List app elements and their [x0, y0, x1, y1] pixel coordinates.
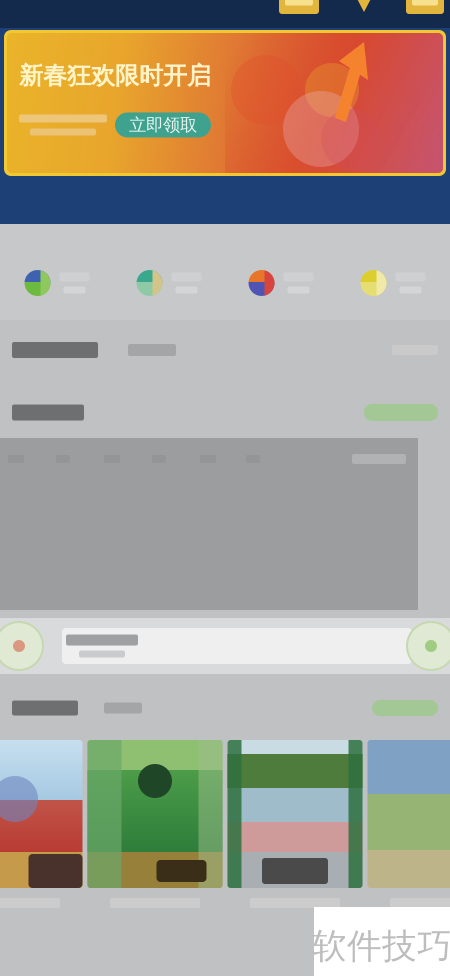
button[interactable]: Notifications	[352, 0, 376, 14]
button[interactable]: More games	[372, 700, 438, 716]
button[interactable]	[87, 740, 222, 916]
button[interactable]: Shop	[0, 618, 38, 674]
button[interactable]	[227, 740, 362, 916]
button[interactable]	[1, 224, 113, 320]
button[interactable]: Coins	[276, 0, 322, 14]
button[interactable]	[113, 224, 225, 320]
staticText: 新春狂欢限时开启	[19, 61, 211, 90]
button[interactable]: 新春狂欢限时开启	[4, 30, 446, 176]
button[interactable]	[0, 740, 82, 916]
staticText: 立即领取	[129, 114, 197, 136]
staticText: 软件技巧	[312, 925, 450, 968]
button[interactable]: Profile	[406, 0, 444, 14]
button[interactable]	[367, 740, 450, 916]
button[interactable]	[225, 224, 337, 320]
button[interactable]: Gift	[412, 618, 450, 674]
button[interactable]	[337, 224, 449, 320]
button[interactable]: More	[364, 404, 438, 421]
